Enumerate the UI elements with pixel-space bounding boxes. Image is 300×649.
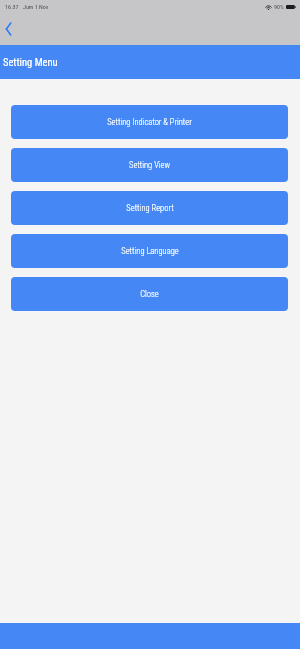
staticText: Setting View [129,160,170,170]
staticText: Setting Language [121,246,179,256]
button[interactable]: Setting Report [11,191,288,225]
staticText: 90% [274,3,284,10]
button[interactable]: Close [11,277,288,311]
button[interactable]: Setting View [11,148,288,182]
staticText: 16.37 [5,3,19,10]
staticText: Setting Indicator & Printer [107,117,192,127]
button[interactable]: Setting Language [11,234,288,268]
staticText: Jum 1 Nov [23,3,49,10]
staticText: Close [140,289,159,299]
button[interactable]: Setting Indicator & Printer [11,105,288,139]
button[interactable]: Back [0,21,16,37]
staticText: Setting Menu [3,56,58,68]
staticText: Setting Report [126,203,174,213]
